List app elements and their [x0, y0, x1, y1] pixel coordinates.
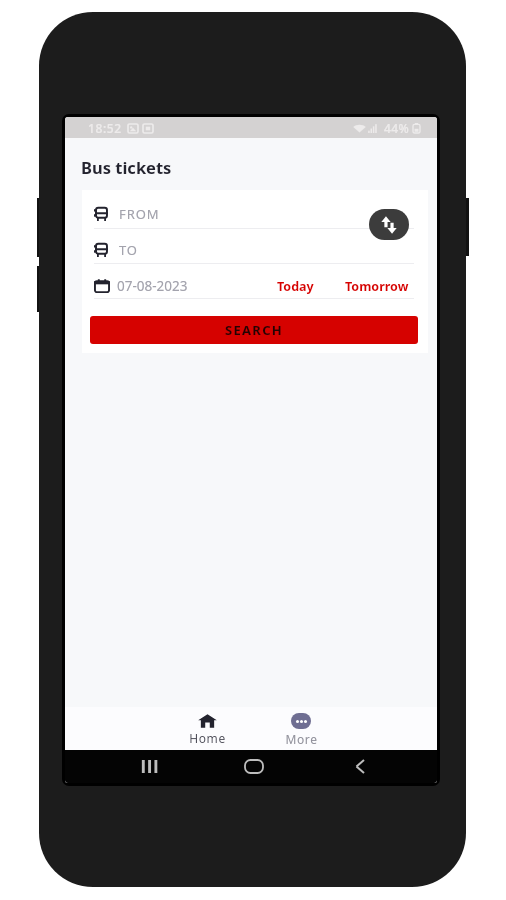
staticText: 44%: [384, 120, 410, 136]
button[interactable]: Back: [343, 750, 377, 783]
button[interactable]: SEARCH: [90, 316, 418, 344]
button[interactable]: Swap origin and destination: [369, 209, 409, 240]
button[interactable]: Home: [237, 750, 271, 783]
button[interactable]: More: [279, 709, 323, 751]
staticText: Today: [277, 278, 314, 295]
button[interactable]: Tomorrow: [345, 278, 409, 295]
button[interactable]: Today: [277, 278, 314, 295]
staticText: 07-08-2023: [117, 277, 188, 295]
button[interactable]: Home: [185, 710, 229, 750]
staticText: 18:52: [88, 120, 122, 136]
staticText: FROM: [119, 205, 160, 223]
staticText: More: [285, 731, 318, 747]
staticText: Tomorrow: [345, 278, 409, 295]
staticText: SEARCH: [225, 321, 284, 339]
staticText: TO: [119, 241, 138, 259]
button[interactable]: FROM: [82, 195, 428, 228]
button[interactable]: Recents: [132, 750, 166, 783]
button[interactable]: TO: [82, 229, 428, 263]
staticText: Bus tickets: [81, 156, 172, 178]
staticText: Home: [189, 730, 226, 746]
